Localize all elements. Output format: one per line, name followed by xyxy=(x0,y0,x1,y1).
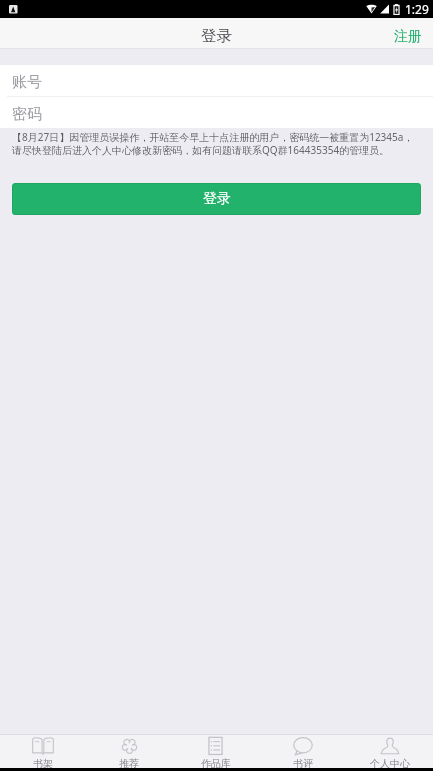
button[interactable]: 个人中心 xyxy=(346,735,433,768)
staticText: 登录 xyxy=(201,26,232,46)
button[interactable]: 账号 xyxy=(0,65,433,96)
button[interactable]: 书架 xyxy=(0,735,86,768)
staticText: 1:29 xyxy=(405,1,429,17)
button[interactable]: 推荐 xyxy=(86,735,172,768)
staticText: 注册 xyxy=(394,28,422,46)
staticText: 作品库 xyxy=(201,757,231,768)
button[interactable]: 书评 xyxy=(259,735,346,768)
button[interactable]: 登录 xyxy=(12,183,421,215)
staticText: 账号 xyxy=(12,73,42,92)
staticText: 推荐 xyxy=(119,757,139,768)
staticText: 个人中心 xyxy=(370,757,410,768)
staticText: 【8月27日】因管理员误操作，开站至今早上十点注册的用户，密码统一被重置为123… xyxy=(12,130,421,157)
button[interactable]: 作品库 xyxy=(172,735,259,768)
button[interactable]: 注册 xyxy=(381,18,433,48)
staticText: 登录 xyxy=(203,190,231,208)
staticText: 书评 xyxy=(293,757,313,768)
button[interactable]: 密码 xyxy=(0,97,433,128)
staticText: 密码 xyxy=(12,105,42,124)
staticText: 书架 xyxy=(33,757,53,768)
